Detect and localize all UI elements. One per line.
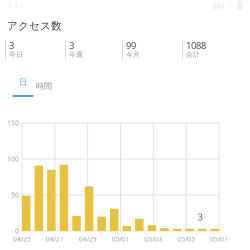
staticText: 05/07 bbox=[210, 235, 228, 243]
staticText: 150 bbox=[7, 119, 19, 127]
staticText: 50 bbox=[11, 191, 19, 199]
staticText: 時間 bbox=[36, 81, 52, 91]
staticText: 05/01 bbox=[111, 235, 129, 243]
button[interactable]: 時間 bbox=[31, 74, 57, 98]
staticText: 3 bbox=[69, 39, 74, 52]
staticText: 9:41 bbox=[7, 0, 24, 11]
staticText: 0 bbox=[15, 227, 19, 235]
staticText: 3 bbox=[197, 211, 202, 223]
staticText: 99 bbox=[126, 39, 136, 52]
staticText: 100 bbox=[7, 155, 19, 163]
staticText: 04/27 bbox=[46, 235, 64, 243]
staticText: 3 bbox=[9, 39, 14, 52]
staticText: 05/03 bbox=[144, 235, 162, 243]
staticText: 今月 bbox=[126, 50, 140, 59]
staticText: 今週 bbox=[69, 50, 83, 59]
staticText: 05/05 bbox=[177, 235, 195, 243]
staticText: 日 bbox=[19, 77, 27, 87]
staticText: 合計 bbox=[186, 50, 200, 59]
button[interactable]: 日 bbox=[12, 74, 34, 98]
staticText: ▮▮▮ ᯤ ▉ bbox=[212, 0, 243, 11]
staticText: アクセス数 bbox=[7, 19, 62, 32]
staticText: 04/25 bbox=[13, 235, 31, 243]
staticText: 1088 bbox=[186, 39, 206, 52]
staticText: 今日 bbox=[9, 50, 23, 59]
staticText: 04/29 bbox=[79, 235, 97, 243]
